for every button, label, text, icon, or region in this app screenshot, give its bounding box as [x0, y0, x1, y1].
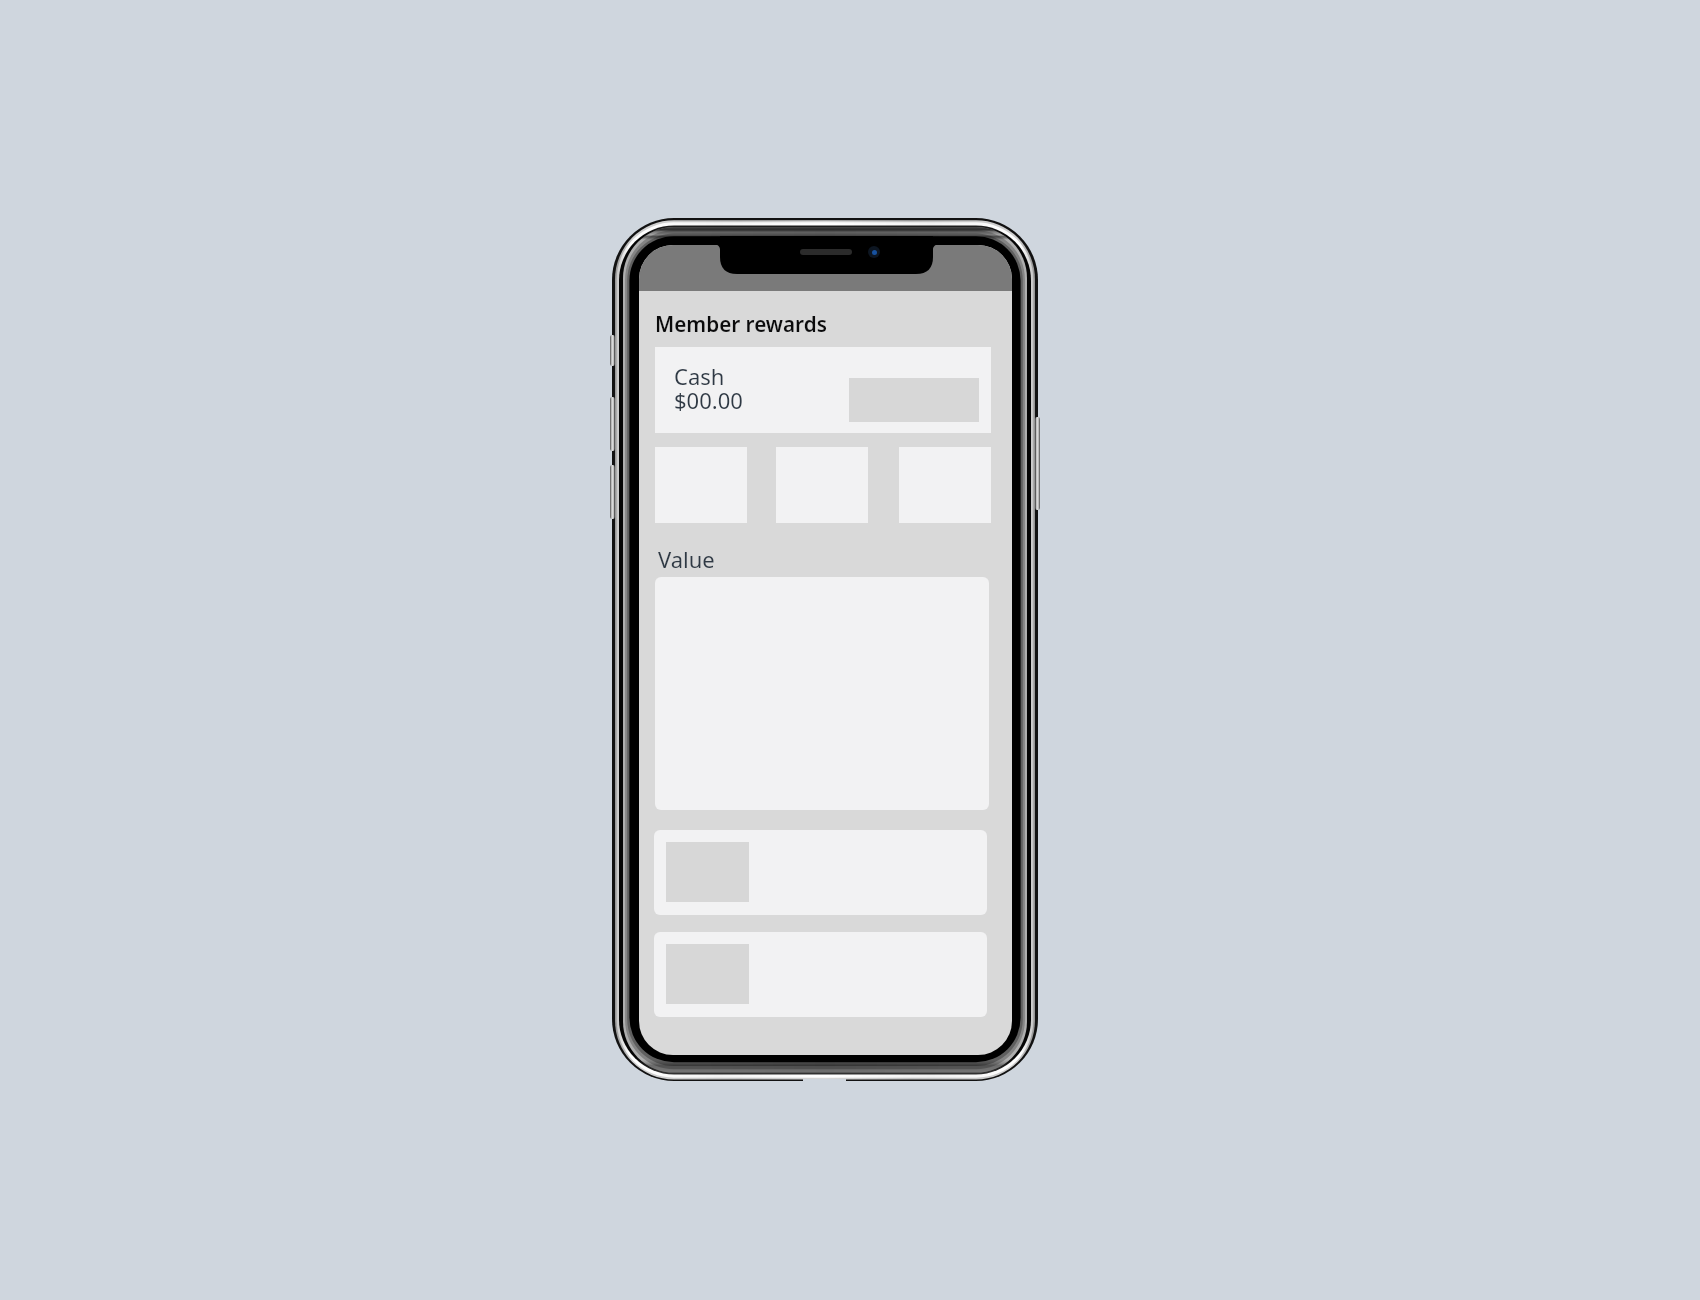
button[interactable]: Cash	[655, 347, 991, 433]
staticText: Member rewards	[655, 310, 827, 338]
staticText: $00.00	[674, 385, 743, 415]
staticText: Value	[658, 544, 715, 574]
staticText: Cash	[674, 361, 725, 391]
button[interactable]: Reward item 2	[654, 932, 987, 1017]
button[interactable]: Reward item 1	[654, 830, 987, 915]
